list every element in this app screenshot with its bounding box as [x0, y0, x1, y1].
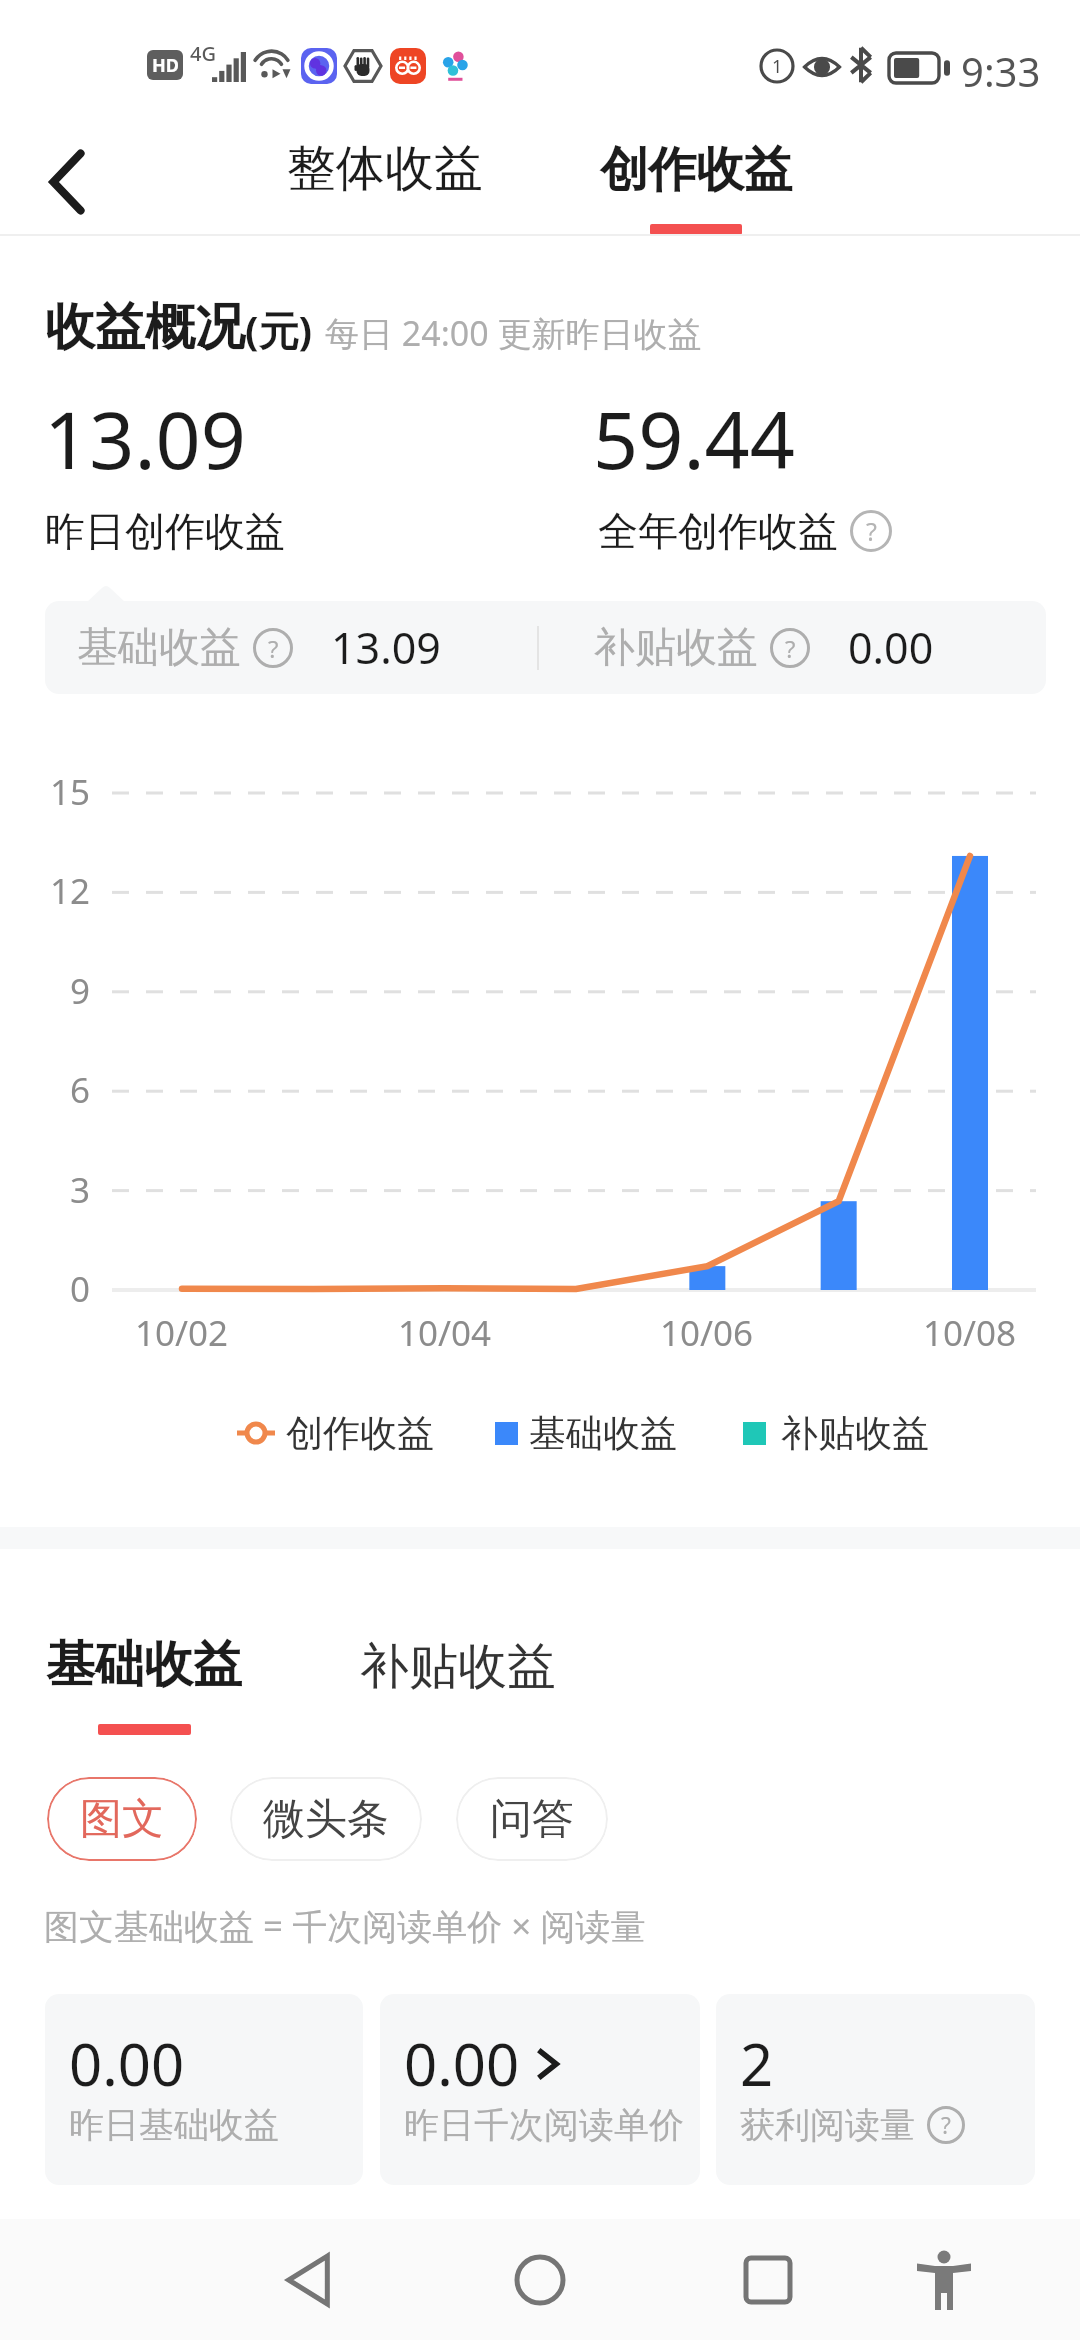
staticText: 昨日基础收益 [69, 2103, 279, 2147]
staticText: 基础收益 [46, 1634, 242, 1696]
staticText: 每日 24:00 更新昨日收益 [325, 310, 702, 356]
staticText: 3 [70, 1166, 91, 1214]
staticText: 整体收益 [287, 138, 483, 200]
staticText: 基础收益 [77, 622, 241, 674]
staticText: 10/08 [923, 1309, 1017, 1357]
staticText: 问答 [490, 1793, 574, 1846]
staticText: 13.09 [331, 618, 441, 677]
button[interactable]: Help [850, 510, 892, 552]
button[interactable]: 问答 [456, 1777, 608, 1861]
staticText: 全年创作收益 [598, 506, 838, 556]
staticText: 微头条 [263, 1793, 389, 1846]
staticText: (元) [245, 302, 313, 357]
staticText: 10/02 [135, 1309, 229, 1357]
staticText: ? [866, 514, 877, 548]
staticText: 15 [50, 768, 91, 816]
staticText: ? [268, 632, 279, 665]
staticText: 创作收益 [600, 140, 792, 200]
button[interactable]: 0.00 [380, 1994, 700, 2185]
button[interactable]: Back [22, 130, 112, 220]
staticText: 1 [772, 54, 783, 79]
staticText: 10/04 [398, 1309, 492, 1357]
button[interactable]: Help [253, 628, 293, 668]
staticText: ? [941, 2110, 951, 2141]
staticText: 6 [70, 1066, 91, 1114]
staticText: 创作收益 [286, 1410, 434, 1457]
staticText: 0.00 [404, 2024, 520, 2103]
staticText: 2 [740, 2024, 774, 2103]
staticText: 获利阅读量 [740, 2103, 915, 2147]
button[interactable]: 补贴收益 [352, 1622, 564, 1712]
staticText: HD [152, 53, 179, 78]
staticText: 13.09 [44, 385, 246, 493]
staticText: 12 [50, 867, 91, 915]
staticText: 补贴收益 [594, 622, 758, 674]
staticText: 昨日创作收益 [45, 506, 285, 556]
button[interactable]: 微头条 [230, 1777, 422, 1861]
staticText: 10/06 [660, 1309, 754, 1357]
button[interactable]: 整体收益 [279, 118, 491, 220]
staticText: 图文 [80, 1793, 164, 1846]
button[interactable]: Recent apps [713, 2225, 823, 2335]
staticText: 59.44 [593, 385, 795, 493]
button[interactable]: Help [770, 628, 810, 668]
button[interactable]: 2 [716, 1994, 1035, 2185]
staticText: 基础收益 [529, 1410, 677, 1457]
staticText: 昨日千次阅读单价 [404, 2103, 684, 2147]
button[interactable]: 0.00 [45, 1994, 363, 2185]
staticText: 补贴收益 [360, 1636, 556, 1698]
button[interactable]: 创作收益 [592, 120, 800, 220]
button[interactable]: 基础收益 [38, 1620, 250, 1710]
staticText: 0.00 [848, 618, 934, 677]
button[interactable]: Back [253, 2225, 363, 2335]
staticText: 9:33 [961, 44, 1041, 98]
staticText: ? [785, 632, 796, 665]
staticText: 0 [70, 1265, 91, 1313]
staticText: 收益概况 [45, 296, 245, 359]
button[interactable]: Help [927, 2106, 965, 2144]
staticText: 补贴收益 [781, 1410, 929, 1457]
button[interactable]: 图文 [47, 1777, 197, 1861]
staticText: 图文基础收益 = 千次阅读单价 × 阅读量 [44, 1902, 646, 1950]
button[interactable]: Accessibility [889, 2225, 999, 2335]
button[interactable]: Home [485, 2225, 595, 2335]
staticText: 4G [190, 40, 216, 67]
staticText: 9 [70, 967, 91, 1015]
staticText: 0.00 [69, 2024, 185, 2103]
